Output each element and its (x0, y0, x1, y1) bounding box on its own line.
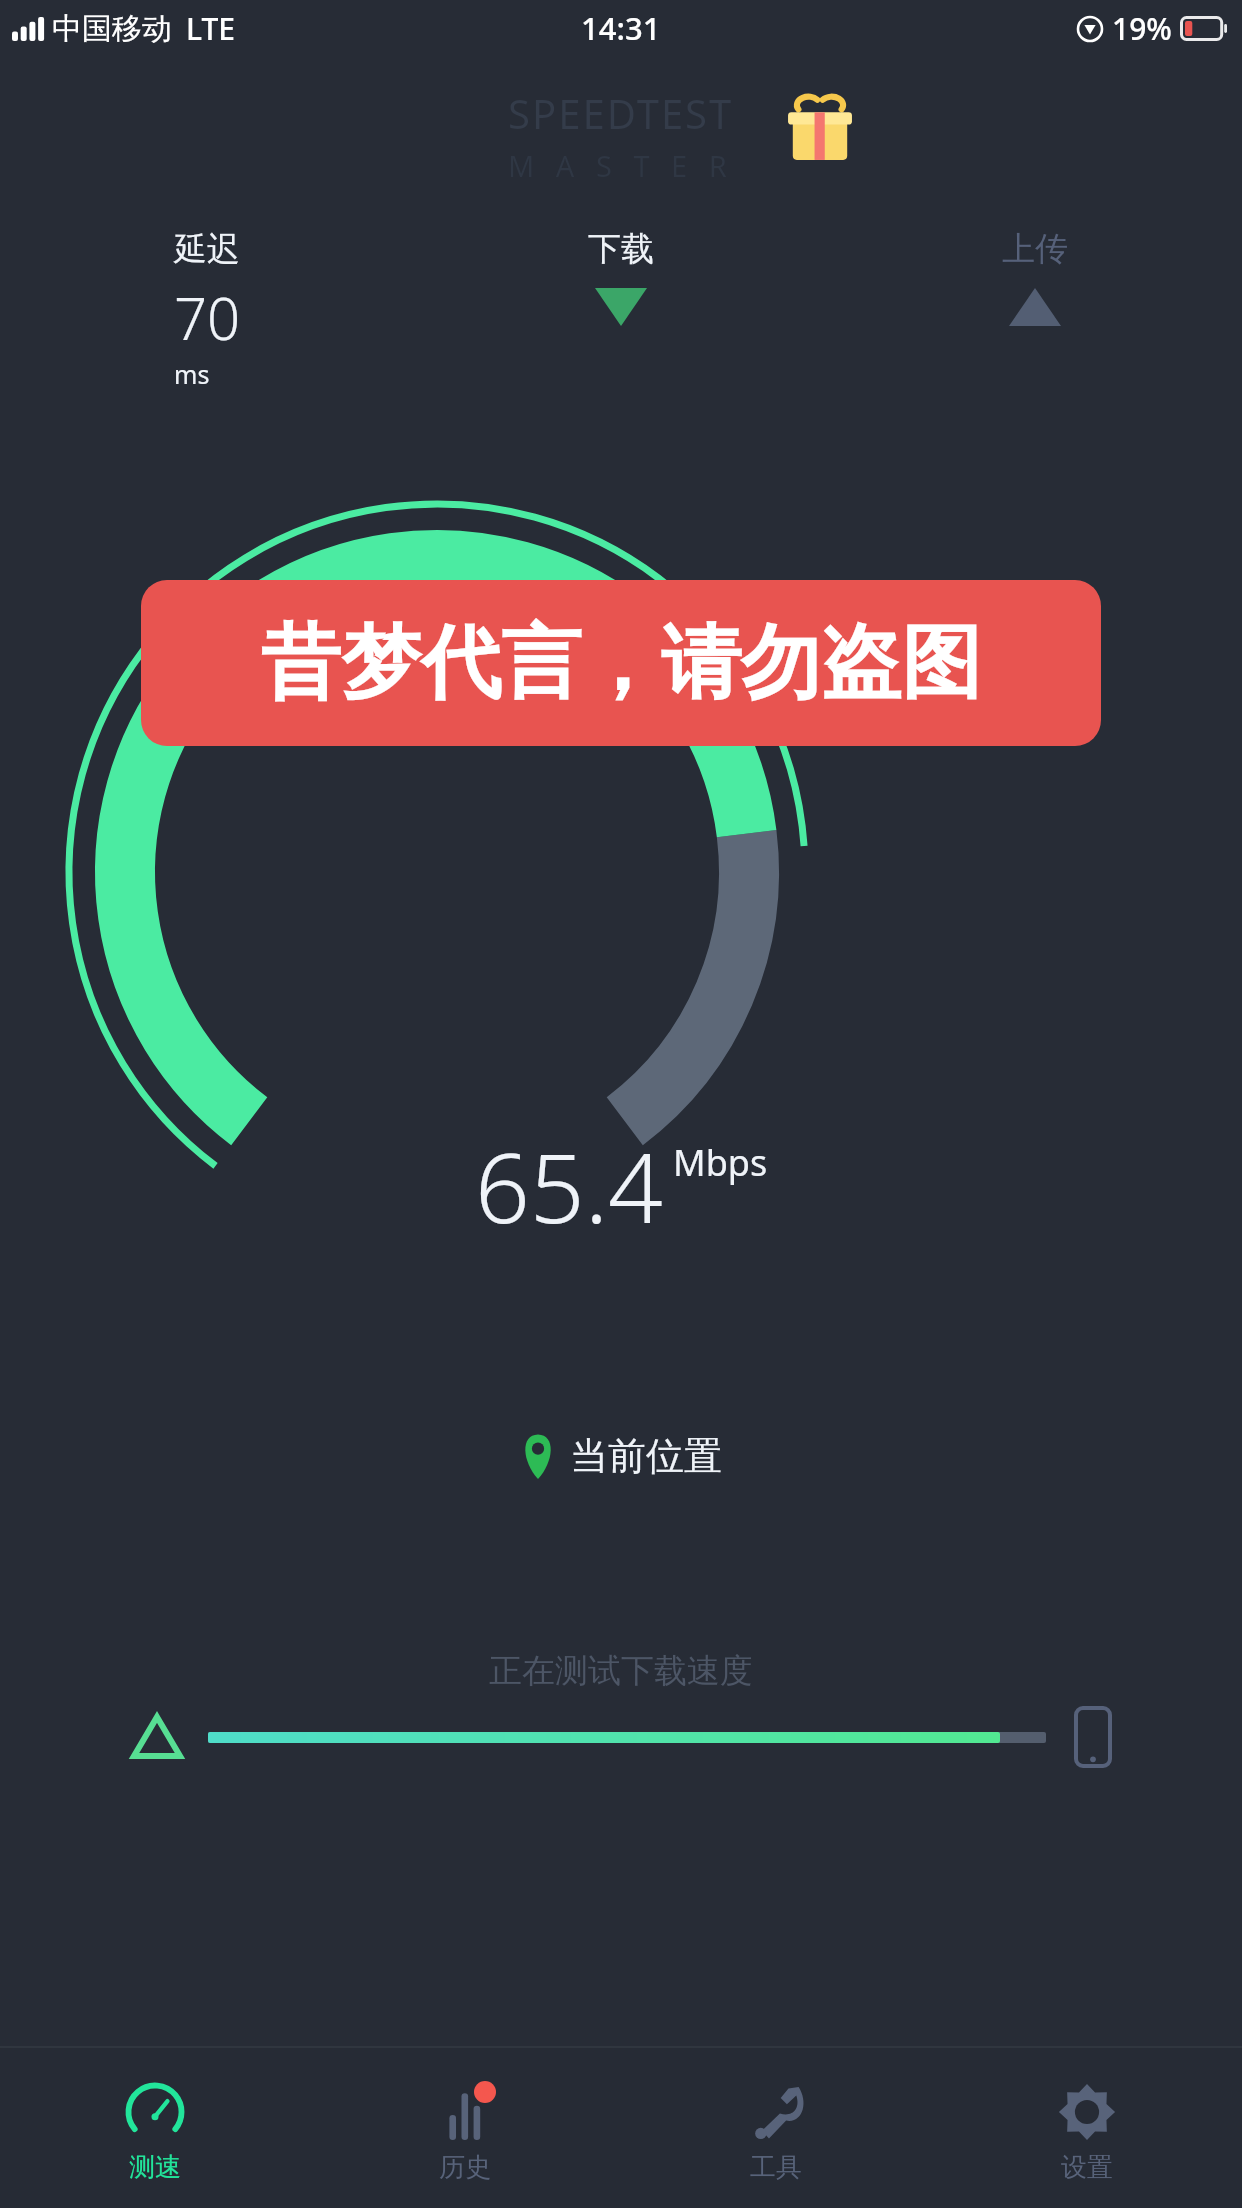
staticText: 当前位置 (570, 1432, 722, 1480)
staticText: M A S T E R (508, 146, 734, 185)
button[interactable]: 工具 (620, 2048, 931, 2208)
staticText: SPEEDTEST (508, 86, 734, 140)
button[interactable]: 历史 (310, 2048, 620, 2208)
staticText: 19% (1112, 8, 1172, 49)
staticText: 70 (174, 278, 241, 357)
staticText: 上传 (1002, 228, 1068, 270)
button[interactable]: 当前位置 (520, 1432, 722, 1480)
button[interactable]: Gift (786, 96, 854, 164)
button[interactable]: 延迟 (0, 228, 414, 391)
staticText: LTE (186, 8, 235, 49)
button[interactable]: 设置 (931, 2048, 1242, 2208)
button[interactable]: 下载 (414, 228, 828, 326)
button[interactable]: 测速 (0, 2048, 310, 2208)
staticText: 工具 (750, 2151, 802, 2184)
staticText: 中国移动 (52, 10, 172, 48)
staticText: 14:31 (581, 7, 661, 49)
staticText: 延迟 (174, 228, 240, 270)
staticText: Mbps (673, 1138, 768, 1187)
staticText: 设置 (1061, 2151, 1113, 2184)
staticText: 昔梦代言，请勿盗图 (261, 613, 981, 714)
staticText: 历史 (439, 2151, 491, 2184)
staticText: 测速 (129, 2151, 181, 2184)
staticText: 下载 (588, 228, 654, 270)
staticText: ms (174, 357, 210, 391)
staticText: 65.4 (475, 1120, 663, 1251)
button[interactable]: 上传 (828, 228, 1242, 326)
staticText: 正在测试下载速度 (489, 1650, 753, 1692)
